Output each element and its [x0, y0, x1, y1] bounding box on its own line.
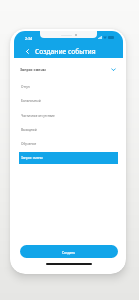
- staticText: Создание события: [35, 47, 96, 56]
- staticText: 2:34: [25, 36, 33, 41]
- button[interactable]: Запрос смены: [20, 63, 116, 75]
- button[interactable]: Создать: [20, 245, 118, 258]
- staticText: Обучение: [21, 142, 37, 146]
- button[interactable]: Больничный: [19, 95, 118, 107]
- staticText: Частичное отсутствие: [21, 114, 55, 118]
- staticText: Выходной: [21, 128, 37, 132]
- button[interactable]: Обучение: [19, 138, 118, 150]
- button[interactable]: Отгул: [19, 81, 118, 93]
- button[interactable]: Частичное отсутствие: [19, 110, 118, 122]
- button[interactable]: Выходной: [19, 124, 118, 136]
- button[interactable]: Back: [23, 47, 32, 56]
- staticText: Запрос смены: [21, 156, 43, 160]
- staticText: Отгул: [21, 85, 30, 89]
- staticText: Запрос смены: [20, 67, 46, 72]
- staticText: Создать: [62, 250, 76, 254]
- staticText: Больничный: [21, 99, 41, 103]
- button[interactable]: Запрос смены: [19, 152, 118, 164]
